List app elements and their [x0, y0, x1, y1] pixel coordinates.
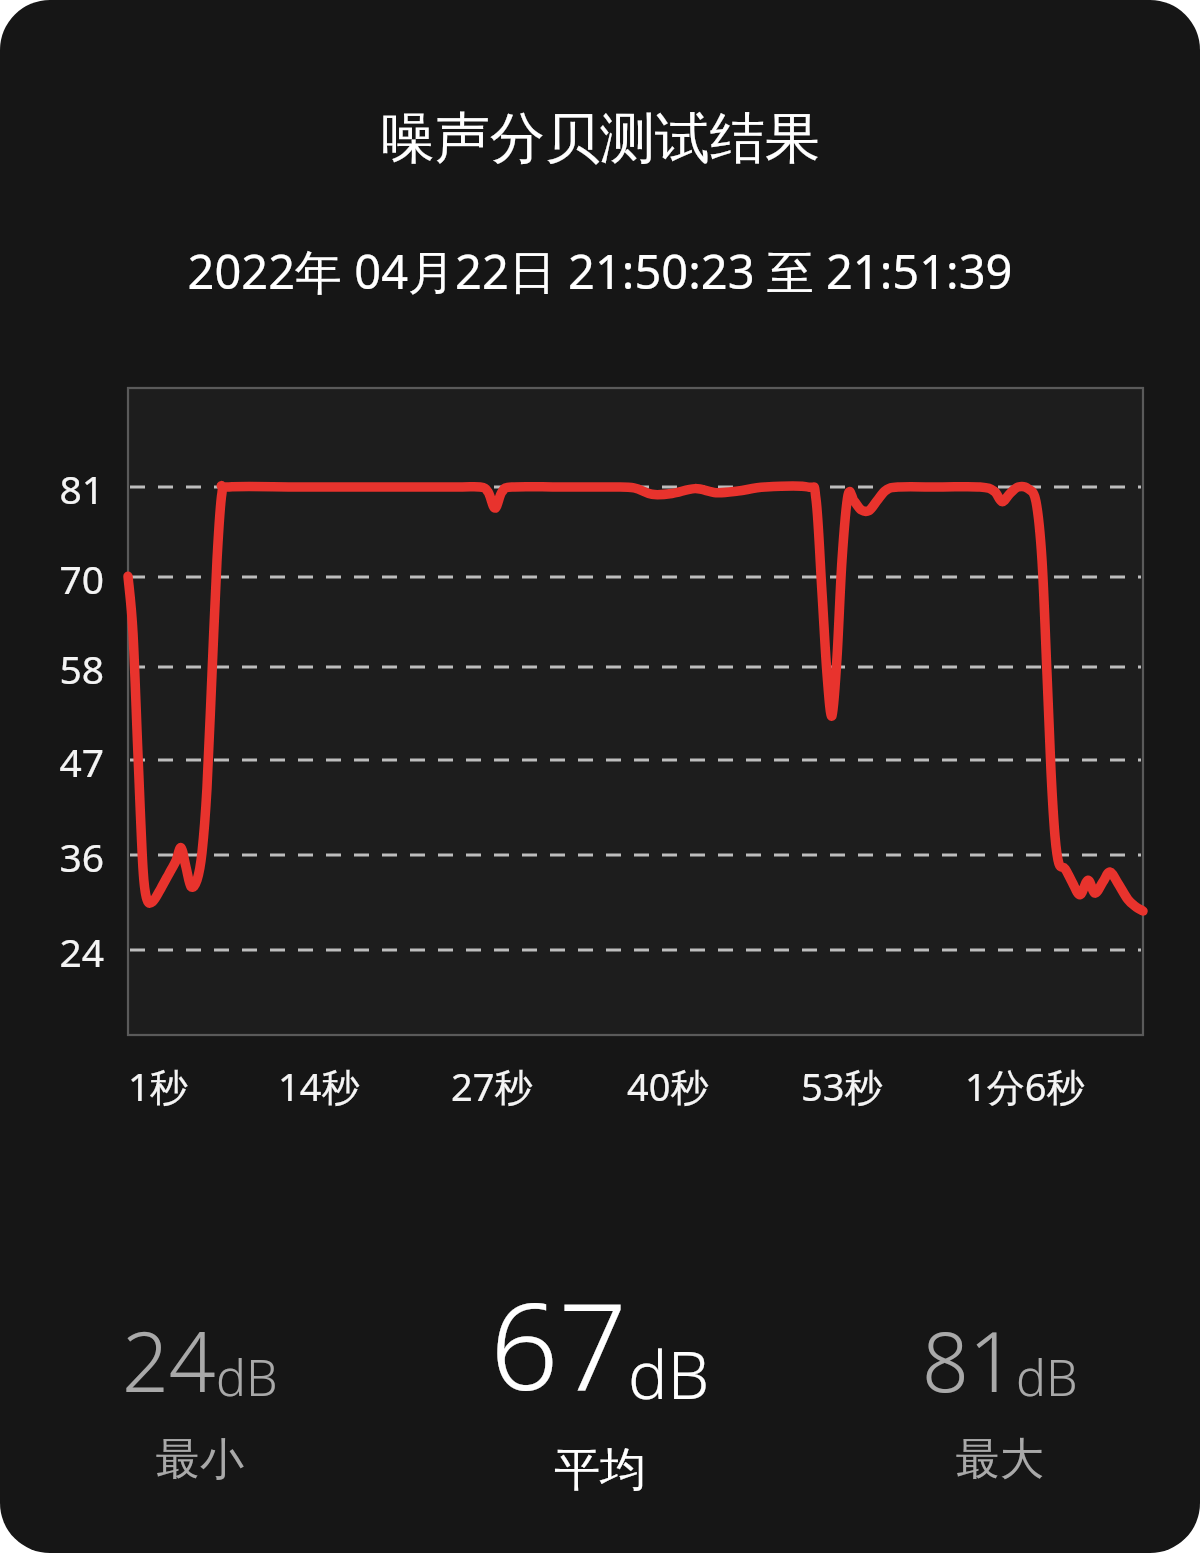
staticText: 噪声分贝测试结果 — [0, 104, 1200, 173]
staticText: dB — [1016, 1343, 1078, 1411]
staticText: 平均 — [554, 1441, 646, 1499]
staticText: 14秒 — [278, 1060, 360, 1112]
staticText: 最大 — [956, 1432, 1044, 1487]
staticText: 47 — [0, 735, 104, 788]
staticText: 24 — [0, 925, 104, 978]
staticText: 24 — [122, 1304, 216, 1416]
staticText: 53秒 — [801, 1060, 883, 1112]
staticText: 27秒 — [451, 1060, 533, 1112]
staticText: 70 — [0, 552, 104, 605]
staticText: 2022年 04月22日 21:50:23 至 21:51:39 — [0, 239, 1200, 303]
button[interactable]: 81 — [800, 1262, 1200, 1487]
staticText: 67 — [490, 1262, 628, 1425]
staticText: dB — [628, 1328, 710, 1418]
button[interactable]: 67 — [400, 1262, 800, 1499]
staticText: 40秒 — [627, 1060, 709, 1112]
staticText: 1秒 — [128, 1060, 188, 1112]
staticText: 58 — [0, 642, 104, 695]
button[interactable]: 24 — [0, 1262, 400, 1487]
staticText: 36 — [0, 830, 104, 883]
staticText: 81 — [0, 462, 104, 515]
staticText: 1分6秒 — [965, 1060, 1085, 1112]
staticText: 81 — [922, 1304, 1016, 1416]
staticText: dB — [216, 1343, 278, 1411]
staticText: 最小 — [156, 1432, 244, 1487]
